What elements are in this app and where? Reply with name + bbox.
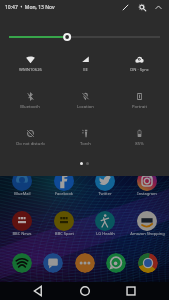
button[interactable]: Torch xyxy=(60,122,110,147)
button[interactable]: Location xyxy=(60,85,110,110)
button[interactable]: LG Health xyxy=(85,211,125,236)
staticText: Portrait xyxy=(132,104,147,110)
button[interactable]: Back xyxy=(29,282,47,300)
staticText: 10:47 • Mon, 13 Nov xyxy=(5,4,55,11)
button[interactable]: WMN10626 xyxy=(5,48,55,73)
staticText: EE xyxy=(83,67,88,73)
staticText: Amazon Shopping xyxy=(130,231,165,236)
button[interactable]: 85% xyxy=(114,122,164,147)
button[interactable]: Settings xyxy=(137,2,148,13)
staticText: Bluetooth xyxy=(20,104,40,110)
staticText: LG Health xyxy=(96,231,115,236)
button[interactable]: DN · Sync xyxy=(114,48,164,73)
button[interactable]: Twitter xyxy=(85,171,125,196)
staticText: 85% xyxy=(135,141,144,147)
staticText: Instagram xyxy=(137,191,157,196)
staticText: BlueMail xyxy=(14,191,31,196)
button[interactable]: BBC Sport xyxy=(44,211,84,236)
staticText: BBC Sport xyxy=(55,231,74,236)
button[interactable]: Chrome xyxy=(138,253,158,273)
button[interactable]: WhatsApp xyxy=(106,253,126,273)
button[interactable]: EE xyxy=(60,48,110,73)
button[interactable]: Collapse xyxy=(153,2,164,13)
button[interactable]: Recents xyxy=(122,282,140,300)
button[interactable]: Bluetooth xyxy=(5,85,55,110)
button[interactable] xyxy=(9,31,160,43)
button[interactable]: BBC News xyxy=(2,211,42,236)
staticText: Do not disturb xyxy=(16,141,45,147)
button[interactable]: Do not disturb xyxy=(5,122,55,147)
staticText: Location xyxy=(77,104,94,110)
button[interactable]: Home xyxy=(76,282,94,300)
staticText: Facebook xyxy=(55,191,73,196)
staticText: WMN10626 xyxy=(19,67,42,73)
button[interactable]: Phone xyxy=(75,253,95,273)
button[interactable]: Amazon Shopping xyxy=(127,211,167,236)
button[interactable]: Spotify xyxy=(12,253,32,273)
button[interactable]: Facebook xyxy=(44,171,84,196)
staticText: Torch xyxy=(80,141,91,147)
button[interactable]: Instagram xyxy=(127,171,167,196)
button[interactable]: Portrait xyxy=(114,85,164,110)
staticText: DN · Sync xyxy=(130,67,149,73)
button[interactable]: BlueMail xyxy=(2,171,42,196)
button[interactable]: Messages xyxy=(43,253,63,273)
button[interactable]: Edit xyxy=(120,2,131,13)
staticText: BBC News xyxy=(12,231,32,236)
staticText: Twitter xyxy=(98,191,112,196)
